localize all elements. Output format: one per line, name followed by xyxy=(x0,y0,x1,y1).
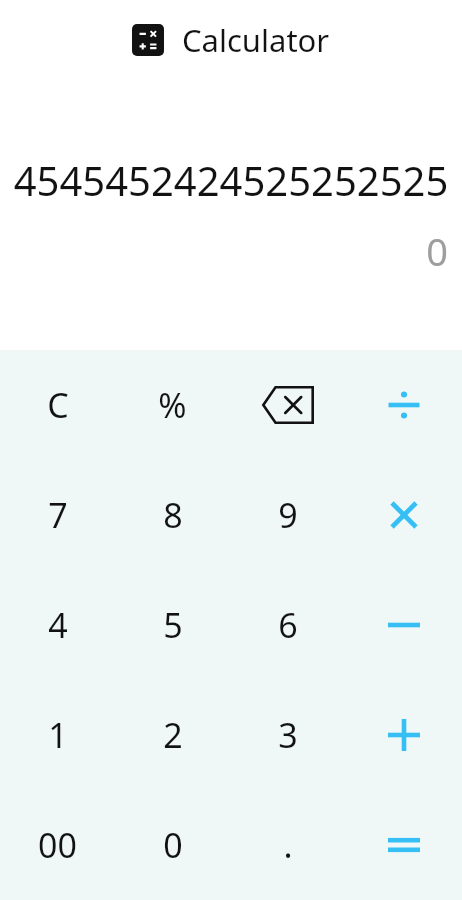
button[interactable]: 2 xyxy=(115,680,230,790)
staticText: 9 xyxy=(278,492,298,538)
button[interactable]: 0 xyxy=(115,790,230,900)
button[interactable]: 9 xyxy=(230,460,346,570)
button[interactable]: Plus xyxy=(346,680,462,790)
button[interactable]: Multiply xyxy=(346,460,462,570)
button[interactable]: Minus xyxy=(346,570,462,680)
button[interactable]: 6 xyxy=(230,570,346,680)
staticText: 4 xyxy=(48,602,68,648)
button[interactable]: C xyxy=(0,350,115,460)
button[interactable]: 1 xyxy=(0,680,115,790)
staticText: C xyxy=(47,382,69,428)
staticText: Calculator xyxy=(182,19,330,61)
staticText: 8 xyxy=(163,492,183,538)
staticText: 0 xyxy=(0,225,448,277)
button[interactable]: 5 xyxy=(115,570,230,680)
button[interactable]: Divide xyxy=(346,350,462,460)
staticText: 3 xyxy=(278,712,298,758)
staticText: 2 xyxy=(163,712,183,758)
staticText: 5 xyxy=(163,602,183,648)
staticText: 0 xyxy=(163,822,183,868)
staticText: 4545452424525252525 xyxy=(12,153,450,207)
button[interactable]: 00 xyxy=(0,790,115,900)
button[interactable]: . xyxy=(230,790,346,900)
button[interactable]: Equals xyxy=(346,790,462,900)
button[interactable]: % xyxy=(115,350,230,460)
button[interactable]: 7 xyxy=(0,460,115,570)
staticText: . xyxy=(283,822,293,868)
button[interactable]: 3 xyxy=(230,680,346,790)
staticText: 6 xyxy=(278,602,298,648)
button[interactable]: 8 xyxy=(115,460,230,570)
staticText: 00 xyxy=(38,822,77,868)
button[interactable]: Backspace xyxy=(230,350,346,460)
staticText: 1 xyxy=(48,712,68,758)
button[interactable]: 4 xyxy=(0,570,115,680)
staticText: 7 xyxy=(48,492,68,538)
staticText: % xyxy=(158,382,187,428)
